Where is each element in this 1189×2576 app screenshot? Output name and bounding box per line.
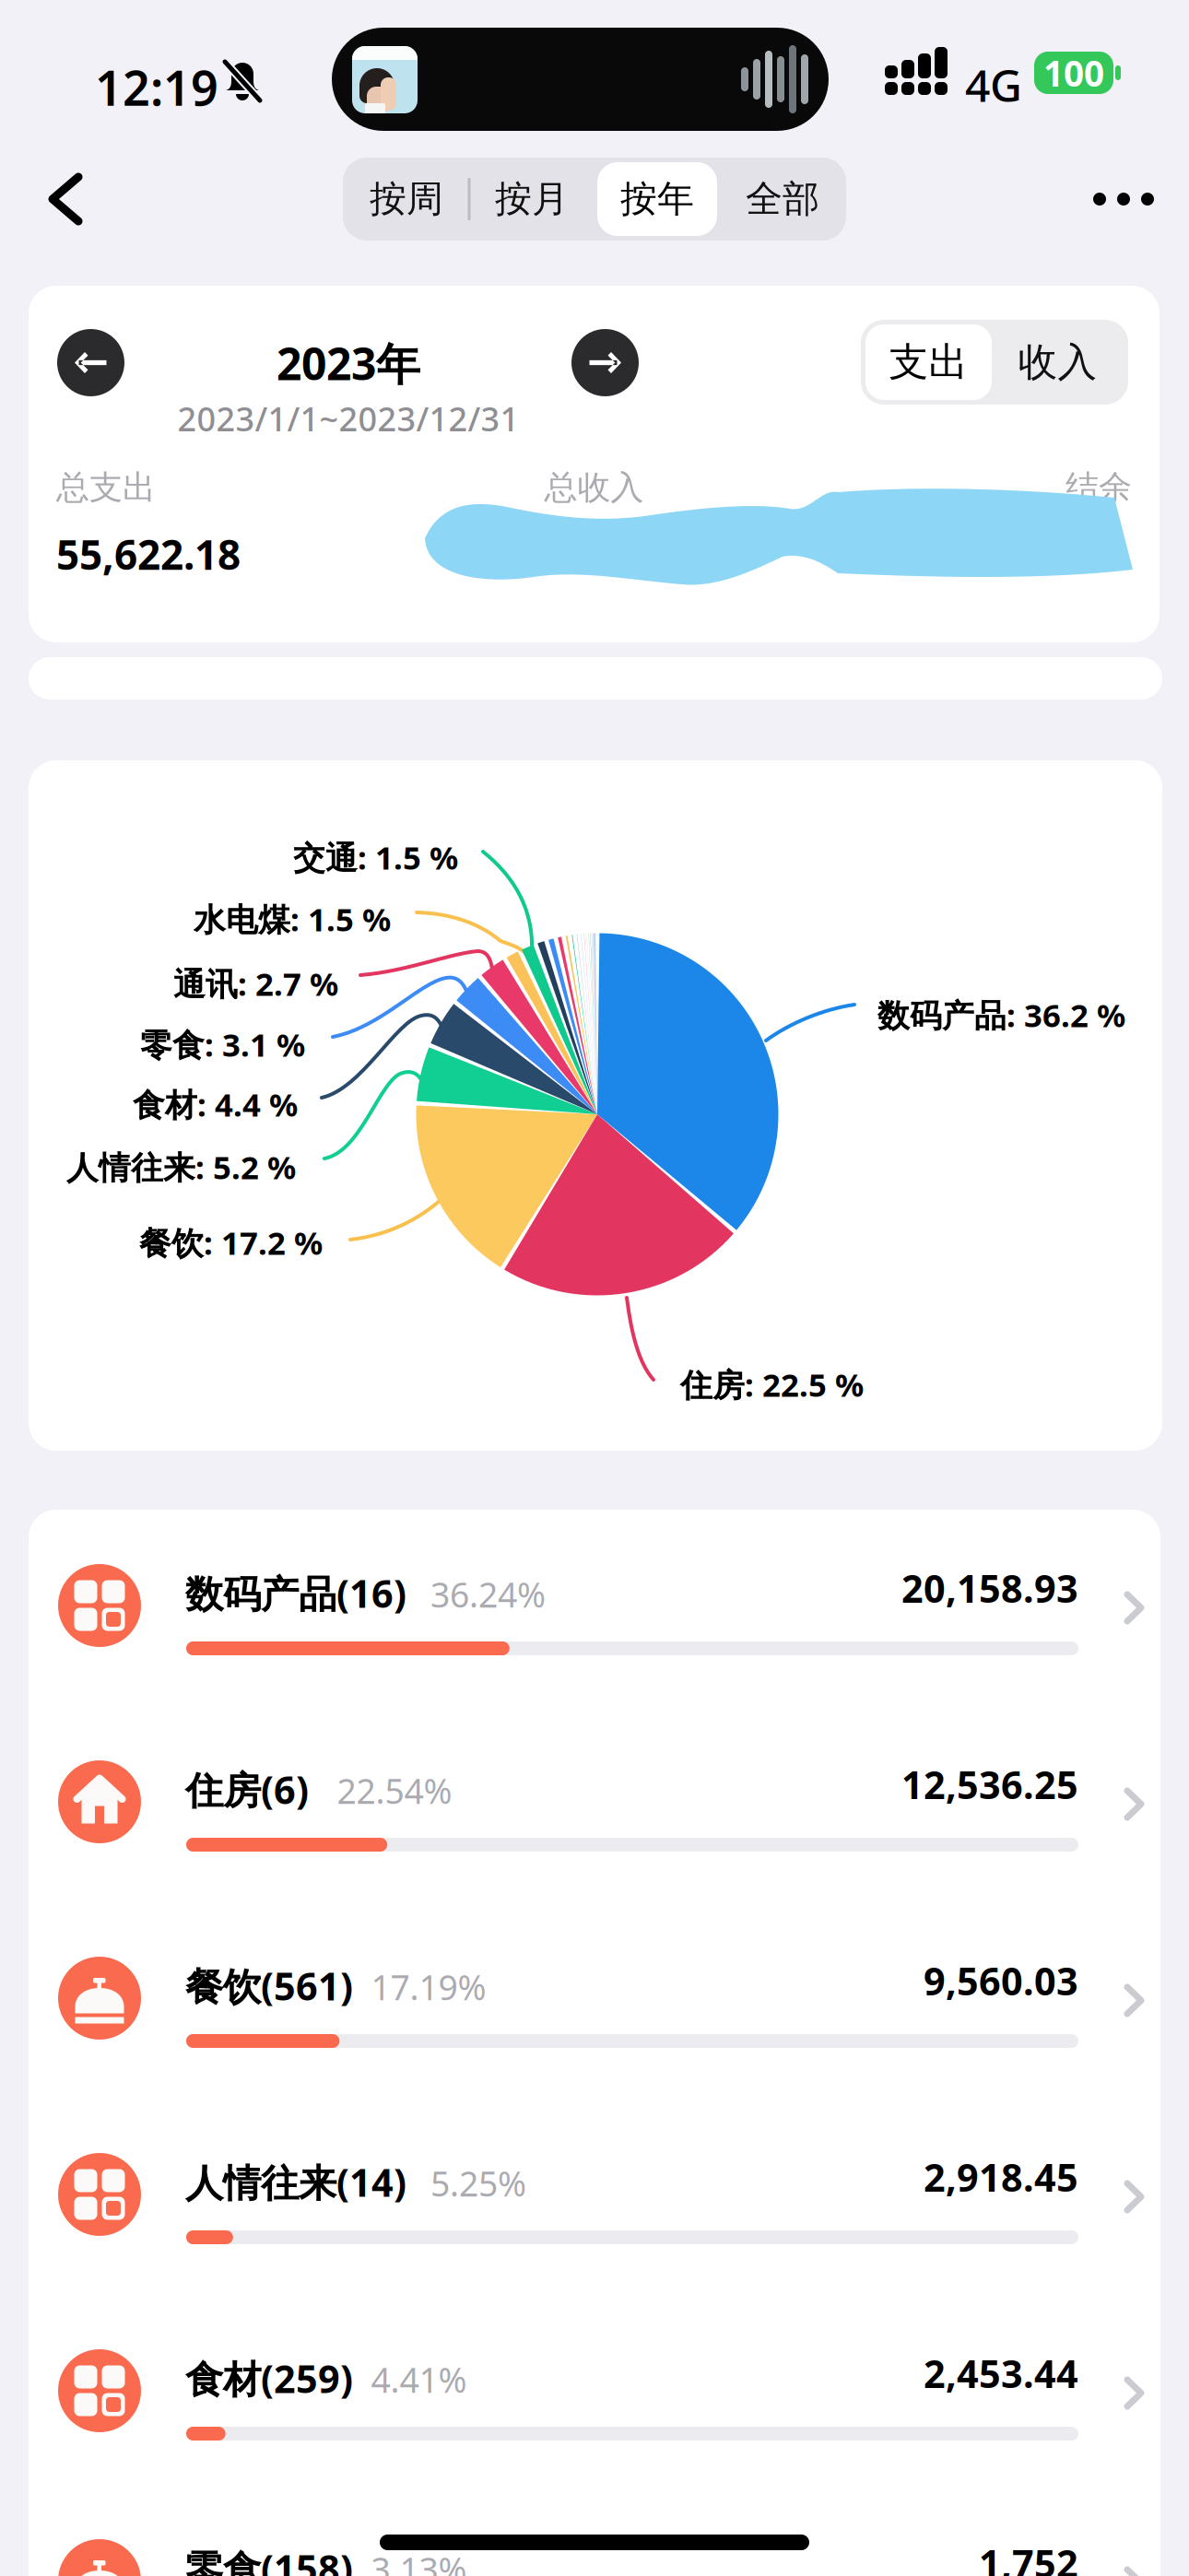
button[interactable]: 全部 [720,158,845,241]
staticText: 12,536.25 [901,1759,1078,1810]
staticText: 1,752 [979,2538,1078,2576]
staticText: 2023/1/1~2023/12/31 [177,396,519,440]
staticText: 按周 [370,176,443,222]
staticText: 住房: 22.5 % [680,1363,864,1406]
staticText: 水电煤: 1.5 % [194,898,391,940]
button[interactable]: 人情往来(14) [29,2099,1160,2278]
staticText: 支出 [889,338,968,386]
staticText: 零食: 3.1 % [140,1023,305,1065]
staticText: 按年 [620,176,694,222]
button[interactable]: 数码产品(16) [29,1510,1160,1689]
staticText: 住房(6) [185,1764,309,1815]
staticText: 数码产品: 36.2 % [877,994,1125,1036]
button[interactable]: 食材(259) [29,2295,1160,2475]
button[interactable]: 餐饮(561) [29,1902,1160,2082]
staticText: 食材(259) [185,2353,353,2404]
staticText: 2023年 [277,334,420,392]
staticText: 结余 [1065,467,1132,508]
staticText: 全部 [746,176,819,222]
staticText: 人情往来: 5.2 % [66,1146,296,1188]
button[interactable]: 支出 [861,320,1128,405]
button[interactable]: 零食(158) [29,2485,1160,2576]
button[interactable]: 按周 [344,158,469,241]
staticText: 5.25% [430,2160,526,2206]
staticText: 按月 [495,176,569,222]
staticText: 交通: 1.5 % [293,836,458,878]
staticText: 通讯: 2.7 % [173,962,338,1005]
staticText: 2,453.44 [924,2348,1078,2399]
staticText: 55,622.18 [56,527,241,581]
staticText: 100 [1043,49,1104,96]
staticText: 36.24% [430,1571,546,1617]
staticText: 9,560.03 [924,1955,1078,2006]
staticText: 总支出 [56,467,156,508]
button[interactable]: Next year [571,329,639,396]
staticText: 17.19% [371,1964,486,2010]
staticText: 4.41% [371,2357,467,2402]
staticText: 收入 [1018,338,1097,386]
staticText: 总收入 [544,467,644,508]
staticText: 20,158.93 [901,1563,1078,1613]
button[interactable]: Previous year [57,329,124,396]
staticText: 4G [965,55,1022,114]
staticText: 22.54% [337,1768,452,1813]
button[interactable]: 按月 [469,158,594,241]
staticText: 3.13% [371,2547,467,2576]
button[interactable]: More [1082,158,1165,241]
staticText: 食材: 4.4 % [133,1083,298,1125]
button[interactable]: 按年 [594,158,720,241]
button[interactable]: 住房(6) [29,1706,1160,1886]
staticText: 数码产品(16) [185,1568,406,1618]
button[interactable]: Back [24,158,107,241]
staticText: 12:19 [95,55,218,119]
staticText: 人情往来(14) [185,2157,406,2207]
staticText: 零食(158) [185,2543,353,2576]
staticText: 餐饮: 17.2 % [139,1221,323,1264]
staticText: 餐饮(561) [185,1960,353,2011]
staticText: 2,918.45 [924,2152,1078,2202]
